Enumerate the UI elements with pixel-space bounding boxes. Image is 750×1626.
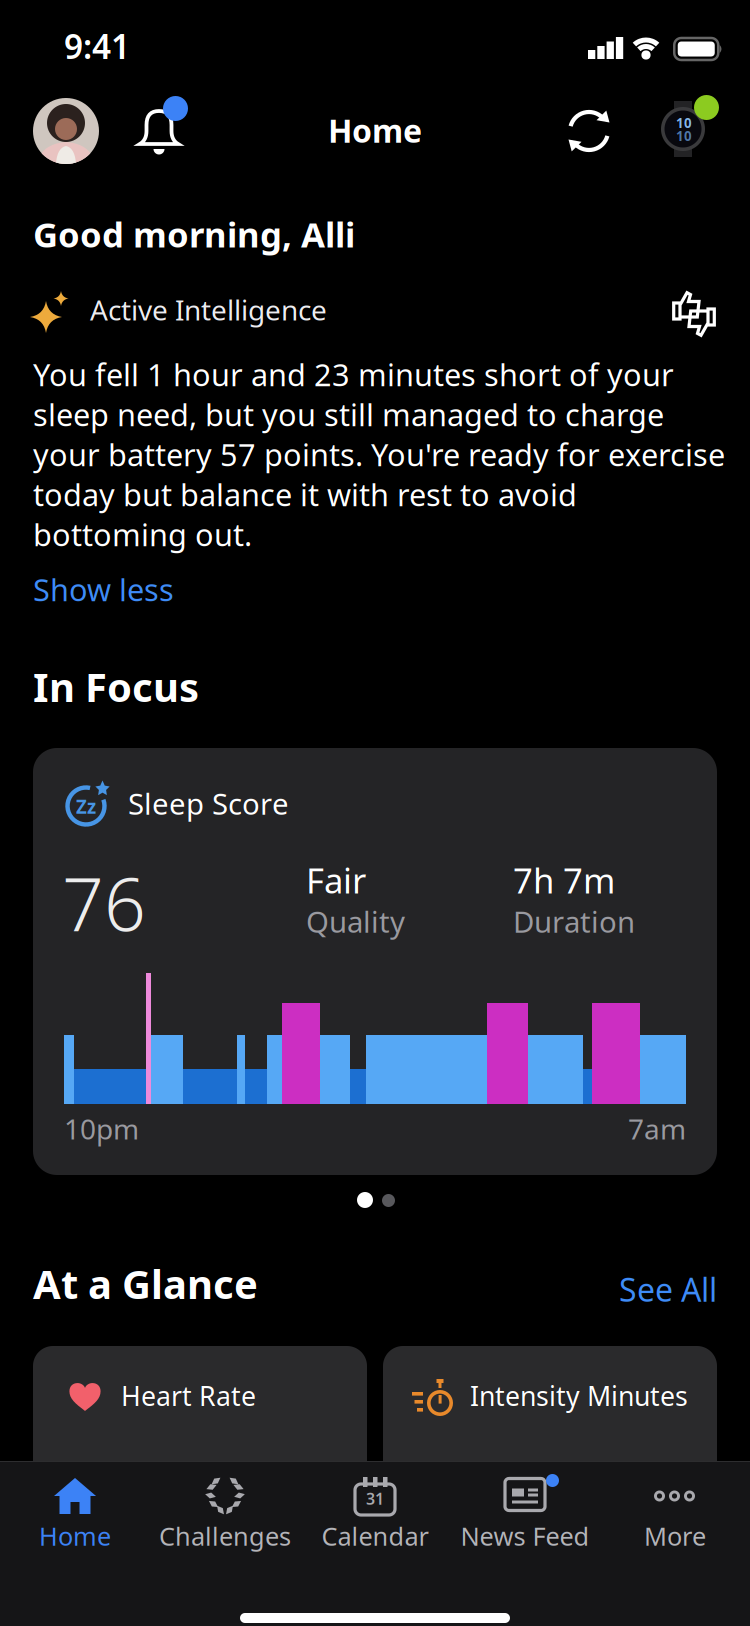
button[interactable]: Heart Rate [33, 1346, 367, 1486]
staticText: Fair [306, 857, 366, 903]
staticText: 10 [676, 114, 692, 132]
staticText: Home [328, 109, 422, 151]
staticText: Good morning, Alli [33, 211, 355, 257]
staticText: See All [619, 1268, 717, 1310]
staticText: 9:41 [64, 24, 130, 68]
staticText: Quality [306, 902, 405, 941]
staticText: bottoming out. [33, 514, 252, 555]
button[interactable]: Profile [33, 98, 99, 164]
staticText: 31 [366, 1488, 384, 1509]
staticText: Heart Rate [121, 1378, 256, 1413]
staticText: today but balance it with rest to avoid [33, 474, 577, 515]
staticText: Intensity Minutes [470, 1378, 688, 1413]
staticText: More [644, 1519, 706, 1553]
staticText: Active Intelligence [90, 291, 327, 328]
staticText: News Feed [460, 1519, 589, 1553]
staticText: 7am [628, 1110, 686, 1147]
button[interactable]: Show less [33, 569, 174, 610]
staticText: 10pm [64, 1110, 139, 1147]
button[interactable]: Sync [564, 106, 614, 156]
staticText: Zz [76, 794, 96, 819]
staticText: Show less [33, 569, 174, 610]
button[interactable]: See All [619, 1268, 717, 1310]
staticText: 76 [62, 854, 146, 951]
staticText: your battery 57 points. You're ready for… [33, 434, 725, 475]
staticText: You fell 1 hour and 23 minutes short of … [33, 354, 674, 395]
staticText: Calendar [321, 1519, 428, 1553]
button[interactable]: More [600, 1461, 750, 1581]
button[interactable]: Notifications [136, 96, 188, 156]
staticText: sleep need, but you still managed to cha… [33, 394, 664, 435]
staticText: Home [39, 1519, 111, 1553]
staticText: In Focus [33, 660, 199, 713]
staticText: Challenges [159, 1519, 291, 1553]
button[interactable]: Intensity Minutes [383, 1346, 717, 1486]
staticText: Duration [513, 902, 635, 941]
button[interactable]: Connected device [661, 95, 719, 157]
button[interactable]: 31 [300, 1461, 450, 1581]
button[interactable]: Zz [33, 748, 717, 1175]
button[interactable]: Feedback [672, 291, 716, 337]
button[interactable]: Home [0, 1461, 150, 1581]
staticText: At a Glance [33, 1257, 258, 1310]
staticText: 7h 7m [513, 857, 615, 903]
button[interactable]: Challenges [150, 1461, 300, 1581]
staticText: 10 [676, 127, 692, 145]
staticText: Sleep Score [128, 784, 289, 823]
button[interactable]: News Feed [450, 1461, 600, 1581]
